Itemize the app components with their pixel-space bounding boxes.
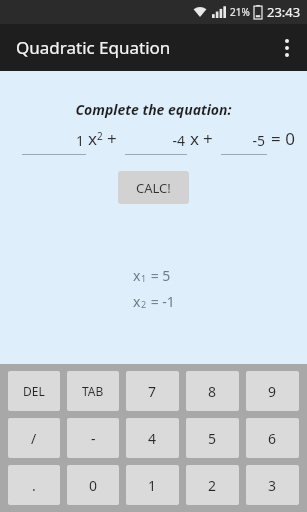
staticText: 4 — [148, 429, 157, 448]
button[interactable]: 1 — [22, 131, 86, 155]
staticText: = -1 — [147, 292, 175, 311]
staticText: 8 — [208, 382, 217, 401]
button[interactable]: . — [8, 465, 60, 505]
staticText: -5 — [252, 131, 265, 150]
staticText: + — [107, 127, 117, 150]
staticText: 2 — [208, 476, 217, 495]
button[interactable]: 3 — [246, 465, 299, 505]
button[interactable]: 8 — [186, 371, 239, 411]
staticText: x — [88, 127, 97, 150]
button[interactable]: CALC! — [118, 171, 189, 204]
button[interactable]: -4 — [125, 131, 187, 155]
staticText: . — [32, 476, 36, 495]
button[interactable]: - — [67, 418, 119, 458]
staticText: -4 — [172, 131, 185, 150]
button[interactable]: 7 — [126, 371, 179, 411]
button[interactable]: 4 — [126, 418, 179, 458]
button[interactable]: 6 — [246, 418, 299, 458]
button[interactable]: More options — [267, 24, 307, 71]
button[interactable]: 1 — [126, 465, 179, 505]
staticText: 2 — [141, 298, 147, 310]
button[interactable]: 5 — [186, 418, 239, 458]
staticText: 6 — [268, 429, 277, 448]
button[interactable]: TAB — [67, 371, 119, 411]
staticText: DEL — [23, 383, 45, 399]
staticText: 2 — [97, 129, 103, 143]
staticText: CALC! — [136, 179, 171, 197]
staticText: x — [133, 266, 141, 285]
button[interactable]: -5 — [221, 131, 267, 155]
staticText: 21% — [230, 5, 250, 19]
button[interactable]: 0 — [67, 465, 119, 505]
staticText: 1 — [148, 476, 157, 495]
staticText: Quadratic Equation — [16, 36, 171, 59]
staticText: 1 — [141, 272, 147, 284]
staticText: 1 — [75, 131, 84, 150]
button[interactable]: 9 — [246, 371, 299, 411]
staticText: x — [133, 292, 141, 311]
staticText: 5 — [208, 429, 217, 448]
button[interactable]: / — [8, 418, 60, 458]
staticText: 23:43 — [267, 3, 301, 21]
staticText: - — [91, 429, 96, 448]
staticText: = 0 — [271, 127, 295, 150]
staticText: 3 — [268, 476, 277, 495]
staticText: / — [31, 429, 37, 448]
staticText: Complete the equation: — [0, 100, 307, 119]
staticText: = 5 — [147, 266, 171, 285]
button[interactable]: DEL — [8, 371, 60, 411]
staticText: TAB — [82, 383, 104, 399]
staticText: x — [190, 127, 199, 150]
staticText: 7 — [148, 382, 157, 401]
staticText: 9 — [268, 382, 277, 401]
staticText: 0 — [89, 476, 98, 495]
button[interactable]: 2 — [186, 465, 239, 505]
staticText: + — [203, 127, 213, 150]
